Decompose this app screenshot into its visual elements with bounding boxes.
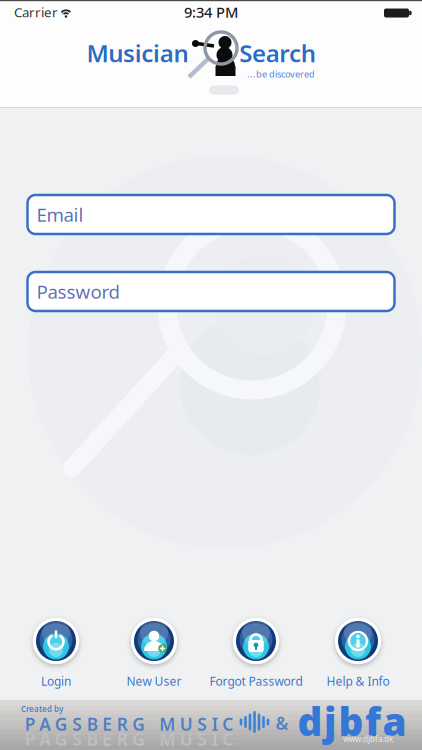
button[interactable]: Login [8,617,104,693]
staticText: & [275,711,288,734]
staticText: Password [36,279,119,304]
staticText: PAGSBERG MUSIC [25,712,233,735]
staticText: New User [126,673,181,689]
staticText: Musician [86,37,188,69]
staticText: Help & Info [326,673,389,689]
staticText: Login [41,673,71,689]
staticText: Carrier [14,3,58,21]
staticText: Forgot Password [209,673,302,689]
staticText: Search [239,37,316,69]
button[interactable]: Password [27,272,394,311]
button[interactable]: Email [27,195,394,234]
staticText: www.djbfa.dk [343,734,393,744]
button[interactable]: Help & Info [310,617,406,693]
staticText: ...be discovered [247,68,315,80]
button[interactable]: Forgot Password [208,617,304,693]
button[interactable]: New User [106,617,202,693]
staticText: djbfa [297,695,406,747]
staticText: Created by [21,704,63,714]
staticText: Email [36,202,83,227]
staticText: 9:34 PM [184,2,238,22]
staticText: PAGSBERG MUSIC [25,727,233,750]
